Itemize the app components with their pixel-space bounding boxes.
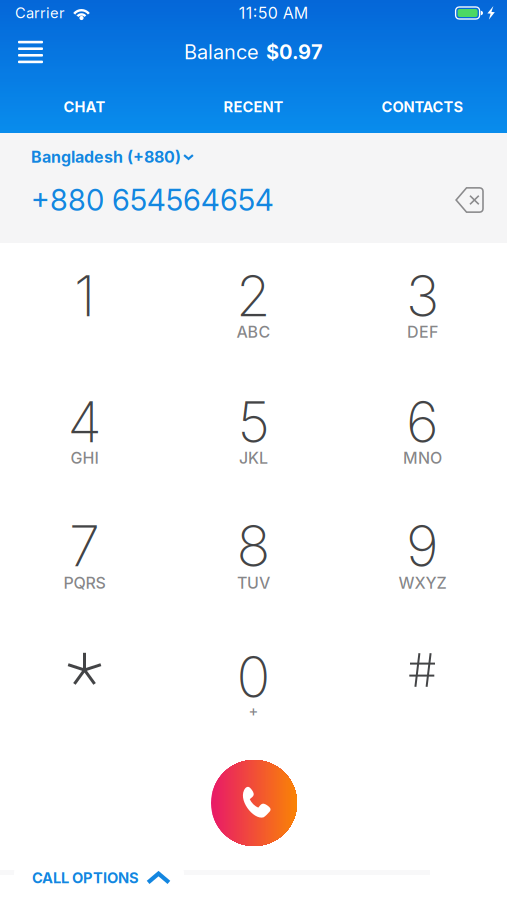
staticText: TUV xyxy=(237,573,270,593)
button[interactable]: 8 xyxy=(169,499,338,627)
button[interactable]: CONTACTS xyxy=(338,90,507,124)
staticText: 5 xyxy=(237,388,269,456)
button[interactable]: 0 xyxy=(169,627,338,755)
staticText: CHAT xyxy=(63,98,105,116)
staticText: 8 xyxy=(236,512,270,580)
staticText: CONTACTS xyxy=(381,98,463,116)
staticText: + xyxy=(248,702,258,720)
staticText: 7 xyxy=(69,512,100,580)
button[interactable]: 3 xyxy=(338,243,507,371)
staticText: Carrier xyxy=(15,4,65,22)
staticText: WXYZ xyxy=(398,573,446,593)
staticText: GHI xyxy=(70,448,98,468)
button[interactable]: CALL OPTIONS xyxy=(14,856,184,900)
button[interactable]: Bangladesh (+880) xyxy=(31,147,194,167)
button[interactable]: CHAT xyxy=(0,90,169,124)
staticText: 2 xyxy=(236,262,271,330)
button[interactable]: Menu xyxy=(0,26,57,78)
staticText: 6 xyxy=(406,388,439,456)
button[interactable]: Call xyxy=(211,760,297,846)
staticText: RECENT xyxy=(223,98,283,116)
staticText: JKL xyxy=(239,448,268,468)
button[interactable]: 9 xyxy=(338,499,507,627)
button[interactable]: 4 xyxy=(0,371,169,499)
button[interactable]: 6 xyxy=(338,371,507,499)
button[interactable]: 5 xyxy=(169,371,338,499)
staticText: 4 xyxy=(67,388,101,456)
staticText: MNO xyxy=(403,448,442,468)
staticText: 11:50 AM xyxy=(239,3,308,23)
button[interactable]: RECENT xyxy=(169,90,338,124)
staticText: PQRS xyxy=(63,573,105,593)
staticText: Balance xyxy=(184,40,259,64)
button[interactable]: Delete xyxy=(455,186,485,213)
button[interactable]: 2 xyxy=(169,243,338,371)
button[interactable]: Star xyxy=(0,627,169,755)
staticText: +880 654564654 xyxy=(31,182,274,218)
staticText: ABC xyxy=(236,322,270,342)
staticText: 9 xyxy=(406,512,439,580)
staticText: Bangladesh (+880) xyxy=(31,147,181,167)
button[interactable]: 1 xyxy=(0,243,169,371)
staticText: DEF xyxy=(407,322,438,342)
staticText: 3 xyxy=(406,262,439,330)
staticText: 1 xyxy=(74,262,95,330)
button[interactable]: 7 xyxy=(0,499,169,627)
staticText: 0 xyxy=(236,643,270,711)
staticText: $0.97 xyxy=(266,40,323,64)
button[interactable]: Pound xyxy=(338,627,507,755)
staticText: CALL OPTIONS xyxy=(32,869,139,887)
